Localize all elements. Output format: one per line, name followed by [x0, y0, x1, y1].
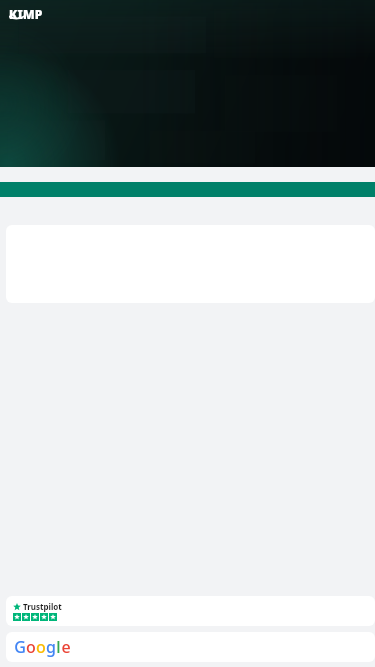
staticText: G — [14, 636, 26, 658]
button[interactable]: Google reviews — [6, 632, 375, 662]
staticText: e — [61, 636, 71, 658]
button[interactable]: KIMP home — [9, 6, 43, 20]
staticText: KIMP — [9, 6, 43, 20]
staticText: o — [36, 636, 46, 658]
staticText: g — [46, 636, 56, 658]
button[interactable]: Trustpilot rating — [6, 596, 375, 626]
staticText: l — [56, 636, 61, 658]
staticText: o — [26, 636, 36, 658]
staticText: Trustpilot — [23, 601, 62, 612]
